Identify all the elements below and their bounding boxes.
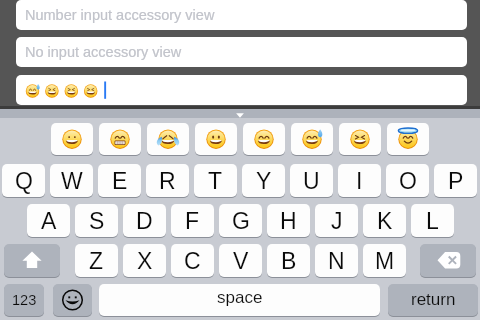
button[interactable]: U (290, 164, 333, 197)
button[interactable]: C (171, 244, 214, 277)
staticText: E (112, 168, 128, 194)
button[interactable]: return (388, 284, 478, 316)
button[interactable]: A (27, 204, 70, 237)
button[interactable]: X (123, 244, 166, 277)
button[interactable]: P (434, 164, 477, 197)
button[interactable]: Z (75, 244, 118, 277)
staticText: S (89, 208, 105, 234)
button[interactable]: No input accessory view (16, 37, 467, 67)
staticText: C (184, 248, 201, 274)
staticText: No input accessory view (25, 44, 182, 60)
button[interactable]: S (75, 204, 118, 237)
button[interactable]: Y (242, 164, 285, 197)
button[interactable]: L (411, 204, 454, 237)
staticText: F (185, 208, 200, 234)
staticText: O (399, 168, 417, 194)
button[interactable]: O (386, 164, 429, 197)
button[interactable]: space (99, 284, 380, 316)
button[interactable]: N (315, 244, 358, 277)
button[interactable]: Emoji keyboard (53, 284, 92, 316)
staticText: 123 (12, 292, 37, 308)
staticText: W (61, 168, 83, 194)
button[interactable]: Emoji suggestion (291, 123, 333, 155)
staticText: H (280, 208, 297, 234)
staticText: J (331, 208, 343, 234)
button[interactable]: Shift (4, 244, 60, 277)
staticText: M (375, 248, 395, 274)
staticText: X (137, 248, 153, 274)
button[interactable]: E (98, 164, 141, 197)
button[interactable]: Emoji suggestion (147, 123, 189, 155)
button[interactable]: W (50, 164, 93, 197)
button[interactable]: Emoji suggestion (99, 123, 141, 155)
button[interactable]: Emoji suggestion (339, 123, 381, 155)
button[interactable]: R (146, 164, 189, 197)
button[interactable]: D (123, 204, 166, 237)
staticText: Z (89, 248, 104, 274)
staticText: L (426, 208, 439, 234)
staticText: Q (15, 168, 33, 194)
staticText: A (41, 208, 57, 234)
staticText: V (233, 248, 249, 274)
button[interactable]: Q (2, 164, 45, 197)
staticText: T (208, 168, 223, 194)
button[interactable]: Number input accessory view (16, 0, 467, 30)
button[interactable]: V (219, 244, 262, 277)
staticText: U (303, 168, 320, 194)
staticText: Y (256, 168, 272, 194)
button[interactable]: Emoji suggestion (51, 123, 93, 155)
button[interactable]: Backspace (420, 244, 476, 277)
button[interactable]: J (315, 204, 358, 237)
button[interactable]: M (363, 244, 406, 277)
button[interactable]: T (194, 164, 237, 197)
staticText: space (217, 288, 263, 307)
staticText: return (411, 290, 456, 309)
button[interactable]: 123 (4, 284, 44, 316)
button[interactable]: F (171, 204, 214, 237)
button[interactable]: K (363, 204, 406, 237)
staticText: D (136, 208, 153, 234)
button[interactable]: G (219, 204, 262, 237)
staticText: R (159, 168, 176, 194)
staticText: Number input accessory view (25, 7, 215, 23)
button[interactable]: I (338, 164, 381, 197)
staticText: G (232, 208, 250, 234)
button[interactable]: Emoji suggestion (387, 123, 429, 155)
staticText: I (356, 168, 363, 194)
staticText: P (448, 168, 464, 194)
staticText: N (328, 248, 345, 274)
staticText: K (377, 208, 393, 234)
button[interactable]: Emoji suggestion (195, 123, 237, 155)
button[interactable]: B (267, 244, 310, 277)
button[interactable]: H (267, 204, 310, 237)
button[interactable]: Text field with emoji (16, 75, 467, 105)
staticText: B (281, 248, 297, 274)
button[interactable]: Emoji suggestion (243, 123, 285, 155)
